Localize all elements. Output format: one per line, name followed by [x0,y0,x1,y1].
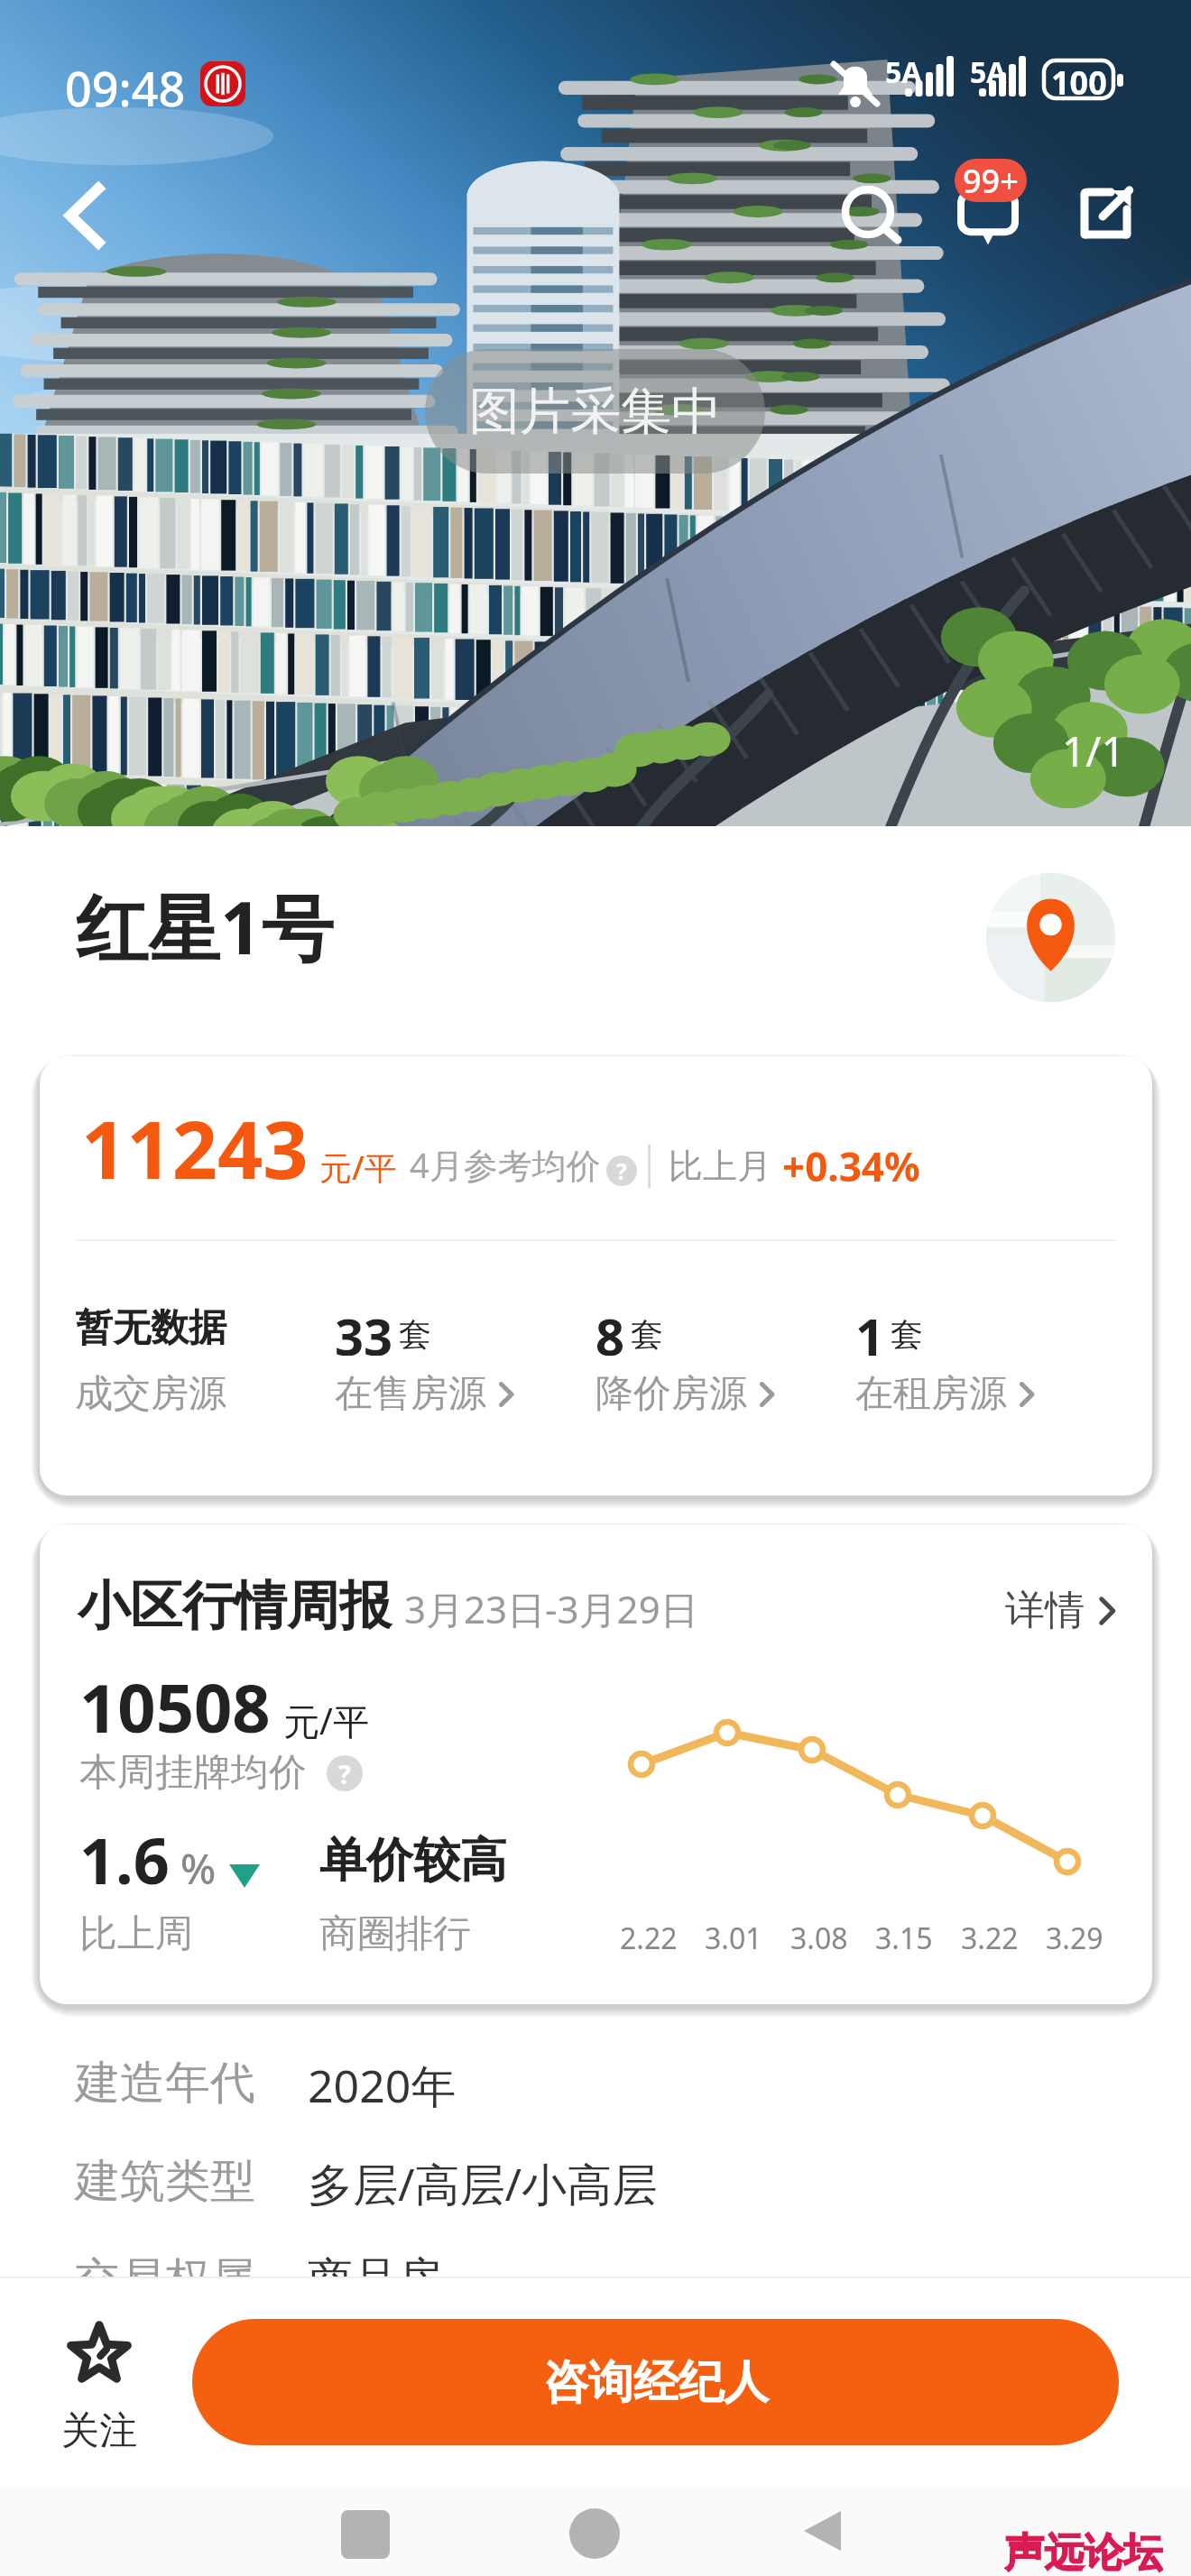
button[interactable]: Property photo gallery [0,0,1191,826]
button[interactable]: 1 [855,1302,1115,1418]
staticText: 2.22 [620,1918,678,1958]
button[interactable]: Back [799,2508,845,2553]
button[interactable]: Messages [938,155,1038,254]
staticText: 交易权属 [75,2251,255,2308]
staticText: 声远论坛 [1004,2528,1163,2575]
staticText: 99+ [963,159,1019,202]
button[interactable]: Recents [341,2510,390,2559]
button[interactable]: 咨询经纪人 [192,2319,1119,2445]
button[interactable]: Home [569,2508,620,2559]
button[interactable]: 关注 [54,2313,144,2461]
staticText: 商品房 [308,2251,443,2308]
staticText: 2020年 [308,2055,457,2116]
button[interactable] [40,1524,1152,2004]
button[interactable]: Search [818,164,918,263]
staticText: 100 [1051,60,1107,98]
staticText: 商圈排行 [319,1910,471,1958]
staticText: 在售房源 [335,1370,486,1418]
staticText: 暂无数据 [75,1304,226,1352]
staticText: 套 [399,1314,431,1355]
staticText: 在租房源 [855,1370,1007,1418]
staticText: 11243 [81,1094,309,1202]
button[interactable]: 暂无数据 [75,1302,335,1418]
staticText: 3.22 [961,1918,1019,1958]
staticText: 10508 [79,1661,271,1753]
staticText: 小区行情周报 [78,1573,392,1639]
staticText: 降价房源 [595,1370,747,1418]
button[interactable]: 33 [335,1302,595,1418]
staticText: 3.29 [1046,1918,1103,1958]
staticText: 5A [970,52,1007,92]
staticText: 红星1号 [76,877,334,975]
button[interactable]: Back [29,161,137,270]
staticText: 3.15 [875,1918,933,1958]
staticText: 详情 [1005,1586,1085,1635]
staticText: 建筑类型 [75,2153,255,2210]
staticText: 比上月 [669,1145,771,1188]
button[interactable]: 建筑类型 [75,2153,1191,2214]
button[interactable]: Map [986,873,1115,1002]
staticText: 4月参考均价 [410,1141,601,1188]
staticText: 1/1 [1062,722,1125,779]
staticText: 关注 [61,2407,137,2455]
staticText: 1 [855,1302,885,1356]
staticText: 图片采集中 [469,380,722,444]
staticText: ? [616,1156,627,1186]
staticText: 1.6 [79,1817,170,1902]
staticText: 套 [891,1314,923,1355]
staticText: 元/平 [283,1696,369,1745]
staticText: 套 [631,1314,663,1355]
staticText: 3.01 [705,1918,762,1958]
staticText: 建造年代 [75,2055,255,2111]
button[interactable]: 交易权属 [75,2251,1191,2308]
staticText: % [180,1840,217,1897]
button[interactable]: 红星1号 [76,877,334,975]
button[interactable]: 建造年代 [75,2055,1191,2116]
staticText: 单价较高 [319,1831,507,1891]
staticText: 3.08 [790,1918,848,1958]
staticText: 8 [595,1302,625,1356]
staticText: 09:48 [65,56,186,120]
staticText: 元/平 [319,1145,397,1190]
staticText: 咨询经纪人 [543,2354,769,2411]
staticText: 多层/高层/小高层 [308,2153,658,2214]
staticText: 比上周 [79,1910,193,1958]
staticText: ? [338,1756,351,1791]
staticText: 5A [885,52,922,92]
button[interactable]: Share [1057,165,1153,261]
staticText: 本周挂牌均价 [79,1749,307,1797]
staticText: +0.34% [782,1139,920,1193]
staticText: 33 [335,1302,393,1356]
staticText: 3月23日-3月29日 [404,1583,698,1634]
button[interactable]: 8 [595,1302,855,1418]
button[interactable]: 详情 [1005,1586,1115,1635]
button[interactable] [40,1056,1152,1495]
staticText: 成交房源 [75,1370,226,1418]
